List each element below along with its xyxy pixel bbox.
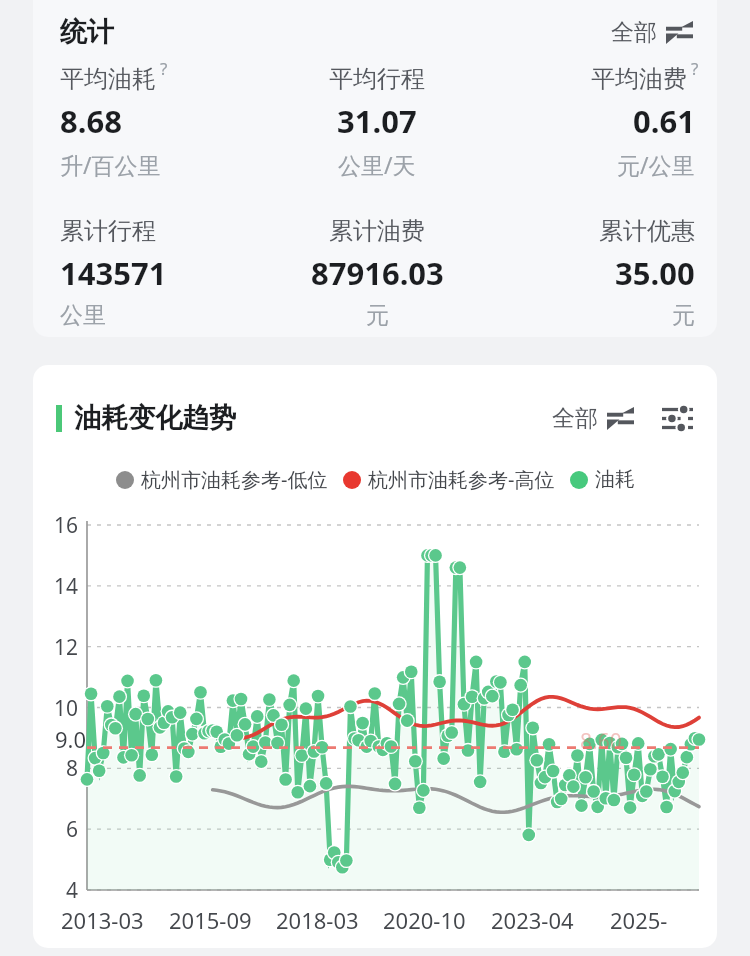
staticText: 全部 bbox=[611, 18, 657, 47]
staticText: 升/百公里 bbox=[60, 149, 161, 180]
button[interactable]: 全部 bbox=[549, 401, 637, 436]
staticText: 6 bbox=[66, 815, 79, 844]
staticText: 平均行程 bbox=[329, 64, 425, 94]
staticText: 公里/天 bbox=[338, 149, 416, 180]
staticText: 油耗 bbox=[595, 467, 635, 492]
staticText: 8 bbox=[66, 754, 79, 783]
staticText: 累计行程 bbox=[60, 216, 156, 246]
staticText: 累计优惠 bbox=[599, 216, 695, 246]
staticText: 2018-03 bbox=[276, 905, 359, 935]
other: Sort bbox=[607, 407, 634, 430]
staticText: 统计 bbox=[60, 15, 114, 49]
staticText: 元 bbox=[366, 301, 389, 330]
staticText: 14 bbox=[54, 572, 79, 601]
staticText: 杭州市油耗参考-高位 bbox=[368, 466, 555, 493]
other: Sort bbox=[666, 21, 693, 44]
staticText: 平均油耗 bbox=[60, 64, 156, 94]
staticText: 2023-04 bbox=[491, 905, 574, 935]
staticText: 2013-03 bbox=[61, 905, 144, 935]
staticText: 元 bbox=[672, 301, 695, 330]
button[interactable]: 全部 bbox=[607, 14, 697, 51]
staticText: 平均油费 bbox=[591, 64, 687, 94]
staticText: 0.61 bbox=[633, 100, 695, 142]
button[interactable]: Chart options bbox=[659, 403, 695, 433]
staticText: 公里 bbox=[60, 301, 106, 330]
staticText: 35.00 bbox=[615, 252, 695, 294]
staticText: 12 bbox=[54, 633, 79, 662]
staticText: ? bbox=[160, 57, 168, 80]
staticText: 10 bbox=[54, 694, 79, 723]
staticText: ? bbox=[691, 57, 699, 80]
staticText: 元/公里 bbox=[617, 149, 695, 180]
staticText: 87916.03 bbox=[311, 252, 444, 294]
staticText: 4 bbox=[66, 876, 79, 905]
staticText: 2020-10 bbox=[383, 905, 466, 935]
staticText: 9.0 bbox=[55, 724, 87, 752]
staticText: 2025- bbox=[610, 905, 668, 935]
staticText: 8.60 bbox=[580, 727, 622, 755]
staticText: 8.68 bbox=[60, 100, 122, 142]
staticText: 143571 bbox=[60, 252, 167, 294]
staticText: 累计油费 bbox=[329, 216, 425, 246]
staticText: 16 bbox=[54, 511, 79, 540]
staticText: 2015-09 bbox=[169, 905, 252, 935]
staticText: 31.07 bbox=[337, 100, 417, 142]
staticText: 全部 bbox=[552, 404, 598, 433]
staticText: 油耗变化趋势 bbox=[74, 401, 236, 435]
staticText: 杭州市油耗参考-低位 bbox=[141, 466, 328, 493]
